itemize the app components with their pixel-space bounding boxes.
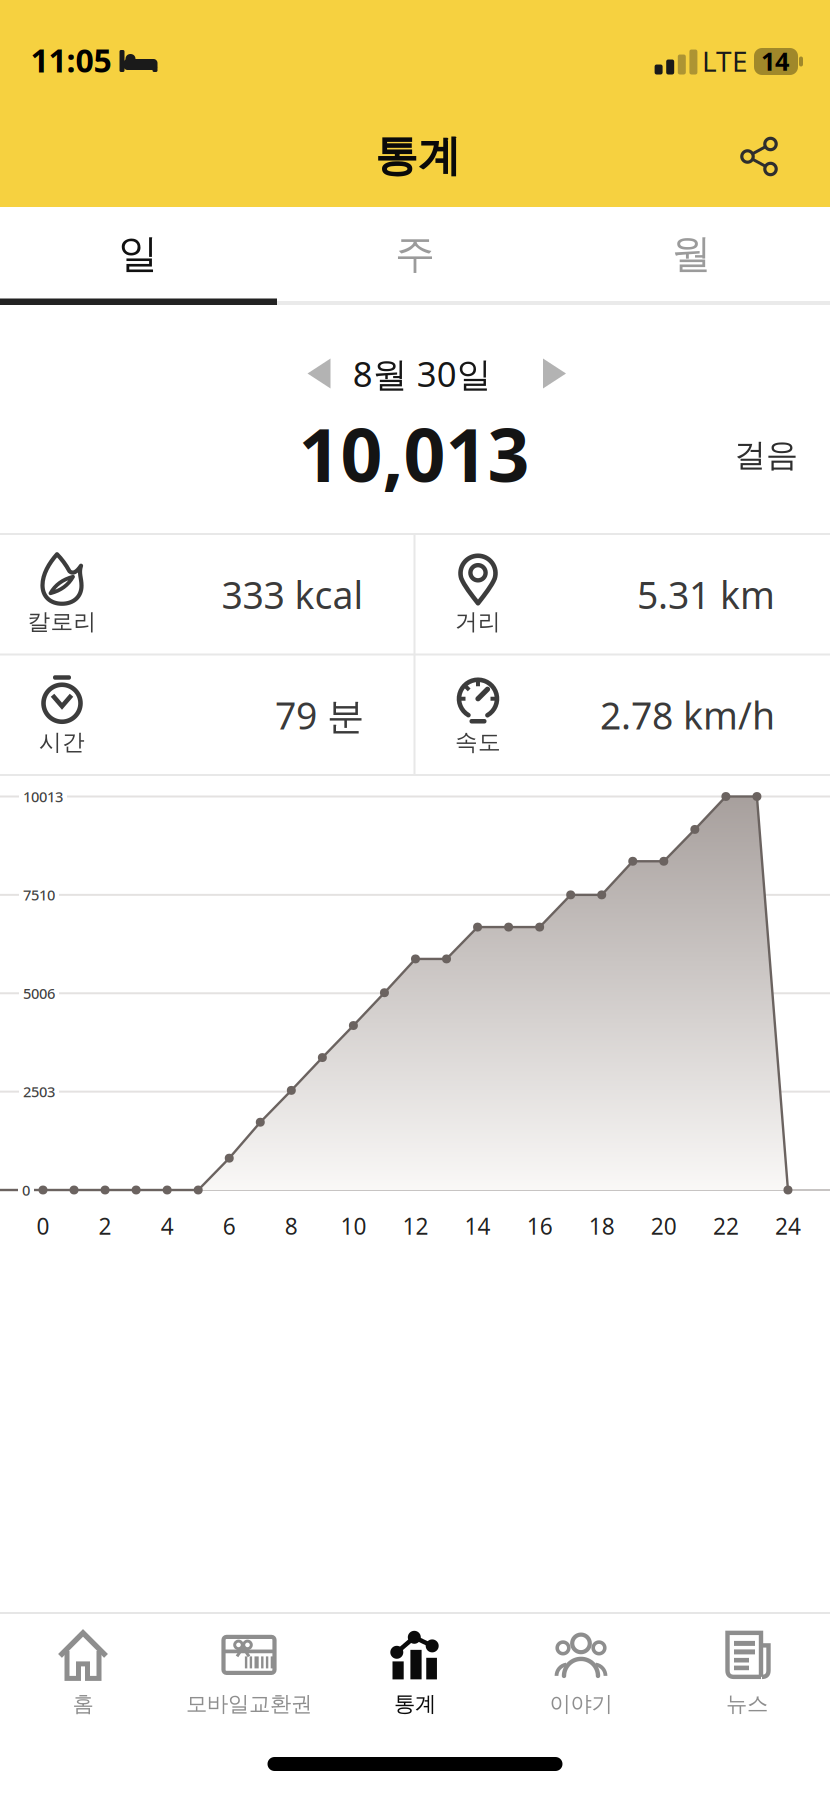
button[interactable]: 모바일교환권 — [166, 1617, 332, 1729]
staticText: 10013 — [23, 787, 63, 806]
button[interactable]: 주 — [277, 207, 553, 301]
button[interactable]: 통계 — [332, 1617, 498, 1729]
staticText: 2503 — [23, 1082, 55, 1101]
staticText: 0 — [36, 1211, 49, 1241]
staticText: 통계 — [394, 1691, 436, 1717]
staticText: 홈 — [72, 1691, 93, 1717]
staticText: 거리 — [455, 608, 501, 636]
staticText: 일 — [118, 229, 158, 278]
staticText: 16 — [527, 1211, 553, 1241]
staticText: 걸음 — [734, 435, 798, 475]
staticText: 4 — [161, 1211, 174, 1241]
staticText: 주 — [395, 229, 435, 278]
staticText: 칼로리 — [27, 608, 96, 636]
staticText: 5.31 km — [637, 570, 775, 619]
staticText: 8 — [285, 1211, 298, 1241]
button[interactable]: 홈 — [0, 1617, 166, 1729]
staticText: 79 분 — [275, 690, 364, 740]
button[interactable]: 공유 — [731, 128, 787, 184]
staticText: 모바일교환권 — [186, 1691, 312, 1717]
staticText: 12 — [402, 1211, 428, 1241]
staticText: 11:05 — [30, 39, 111, 81]
staticText: 월 — [672, 229, 712, 278]
button[interactable]: 이전 날짜 — [307, 358, 330, 388]
staticText: 333 kcal — [221, 570, 363, 619]
button[interactable]: 뉴스 — [664, 1617, 830, 1729]
staticText: 22 — [713, 1211, 739, 1241]
button[interactable]: 월 — [554, 207, 830, 301]
staticText: 0 — [22, 1180, 30, 1200]
button[interactable]: 다음 날짜 — [543, 358, 566, 388]
staticText: 6 — [223, 1211, 236, 1241]
staticText: 이야기 — [549, 1691, 612, 1717]
staticText: 10 — [340, 1211, 366, 1241]
staticText: 14 — [761, 44, 789, 78]
staticText: 뉴스 — [726, 1691, 768, 1717]
staticText: 18 — [589, 1211, 615, 1241]
staticText: 2 — [99, 1211, 112, 1241]
staticText: 20 — [651, 1211, 677, 1241]
staticText: LTE — [702, 42, 748, 80]
staticText: 속도 — [455, 728, 501, 756]
staticText: 10,013 — [298, 405, 529, 502]
staticText: 24 — [775, 1211, 801, 1241]
staticText: 14 — [465, 1211, 491, 1241]
staticText: 7510 — [23, 885, 55, 905]
staticText: 통계 — [375, 130, 461, 182]
staticText: 2.78 km/h — [600, 690, 775, 740]
button[interactable]: 이야기 — [498, 1617, 664, 1729]
staticText: 5006 — [23, 983, 55, 1003]
button[interactable]: 일 — [0, 207, 276, 301]
staticText: 8월 30일 — [353, 350, 492, 396]
staticText: 시간 — [39, 728, 85, 756]
